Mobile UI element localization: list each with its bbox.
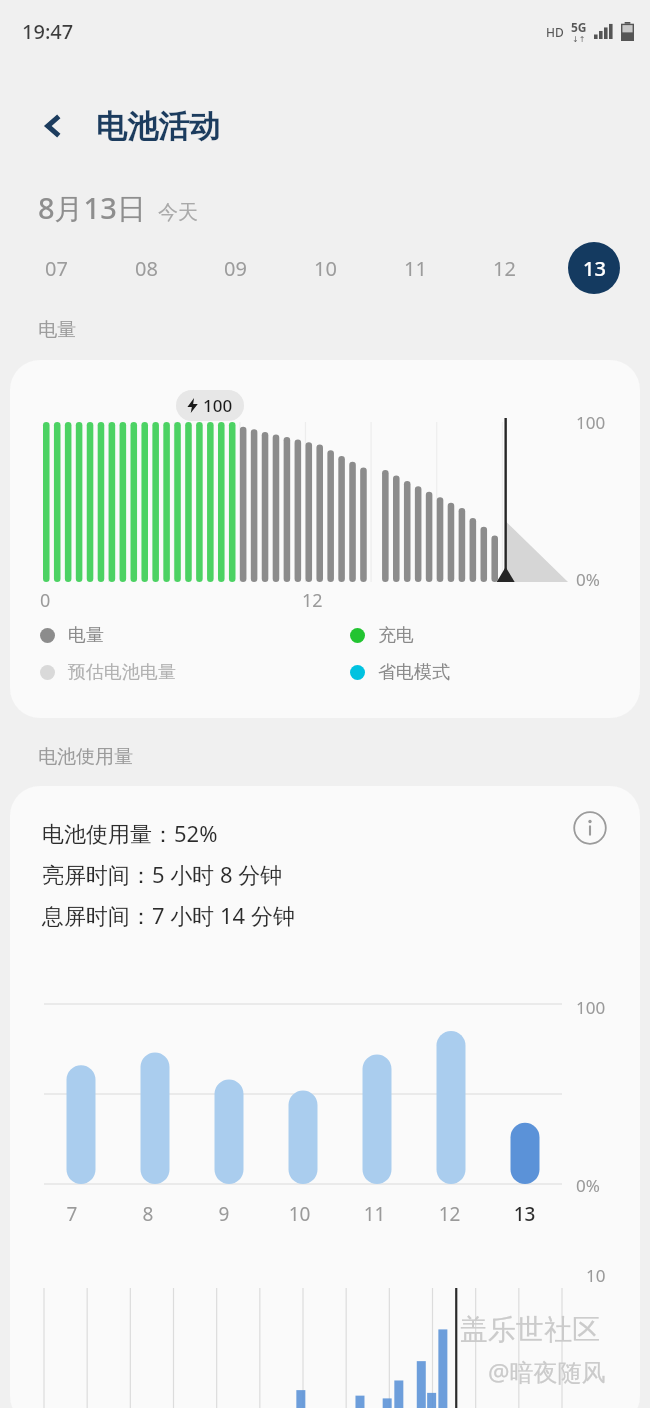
button[interactable]: Back <box>30 102 78 150</box>
staticText: 充电 <box>378 624 414 647</box>
staticText: 08 <box>135 255 158 282</box>
staticText: 今天 <box>158 200 198 225</box>
button[interactable]: 13 <box>568 242 620 294</box>
staticText: 电池使用量 <box>38 745 133 769</box>
staticText: 100 <box>203 394 233 417</box>
button[interactable]: 07 <box>30 242 82 294</box>
staticText: 盖乐世社区 <box>460 1312 600 1347</box>
button[interactable]: 预估电池电量 <box>40 661 350 684</box>
staticText: 07 <box>45 255 68 282</box>
button[interactable]: 电量 <box>40 624 350 647</box>
button[interactable]: 09 <box>209 242 261 294</box>
staticText: 息屏时间：7 小时 14 分钟 <box>42 900 295 930</box>
staticText: ↓↑ <box>572 35 586 44</box>
staticText: 12 <box>302 588 323 613</box>
staticText: 0 <box>40 588 51 613</box>
staticText: @暗夜随风 <box>488 1355 606 1388</box>
button[interactable]: 省电模式 <box>350 661 450 684</box>
staticText: 5G <box>571 19 587 35</box>
staticText: 13 <box>583 255 606 282</box>
staticText: HD <box>546 24 564 40</box>
staticText: 省电模式 <box>378 661 450 684</box>
staticText: 亮屏时间：5 小时 8 分钟 <box>42 859 283 889</box>
staticText: 13 <box>487 1201 562 1227</box>
button[interactable]: 100 <box>10 360 640 718</box>
button[interactable]: 充电 <box>350 624 414 647</box>
staticText: 12 <box>412 1201 487 1227</box>
button[interactable]: 电池使用量：52% <box>10 786 640 1408</box>
staticText: 100 <box>576 411 606 434</box>
staticText: 9 <box>186 1201 262 1227</box>
staticText: 10 <box>586 1264 606 1287</box>
button[interactable]: 12 <box>478 242 530 294</box>
staticText: 电池使用量：52% <box>42 818 218 848</box>
staticText: 11 <box>404 255 427 282</box>
staticText: 电量 <box>38 318 76 342</box>
button[interactable]: 11 <box>389 242 441 294</box>
staticText: 0% <box>576 1174 600 1197</box>
staticText: 09 <box>224 255 247 282</box>
button[interactable]: Info <box>562 800 618 856</box>
button[interactable]: 08 <box>120 242 172 294</box>
staticText: 10 <box>314 255 337 282</box>
staticText: 8 <box>110 1201 186 1227</box>
staticText: 8月13日 <box>38 188 146 228</box>
staticText: 电池活动 <box>96 107 220 146</box>
staticText: 11 <box>337 1201 412 1227</box>
staticText: 12 <box>493 255 516 282</box>
button[interactable]: 10 <box>299 242 351 294</box>
staticText: 预估电池电量 <box>68 661 176 684</box>
staticText: 100 <box>576 996 606 1019</box>
staticText: 10 <box>262 1201 337 1227</box>
staticText: 19:47 <box>22 18 74 45</box>
staticText: 7 <box>34 1201 110 1227</box>
staticText: 电量 <box>68 624 104 647</box>
staticText: 0% <box>576 568 600 591</box>
